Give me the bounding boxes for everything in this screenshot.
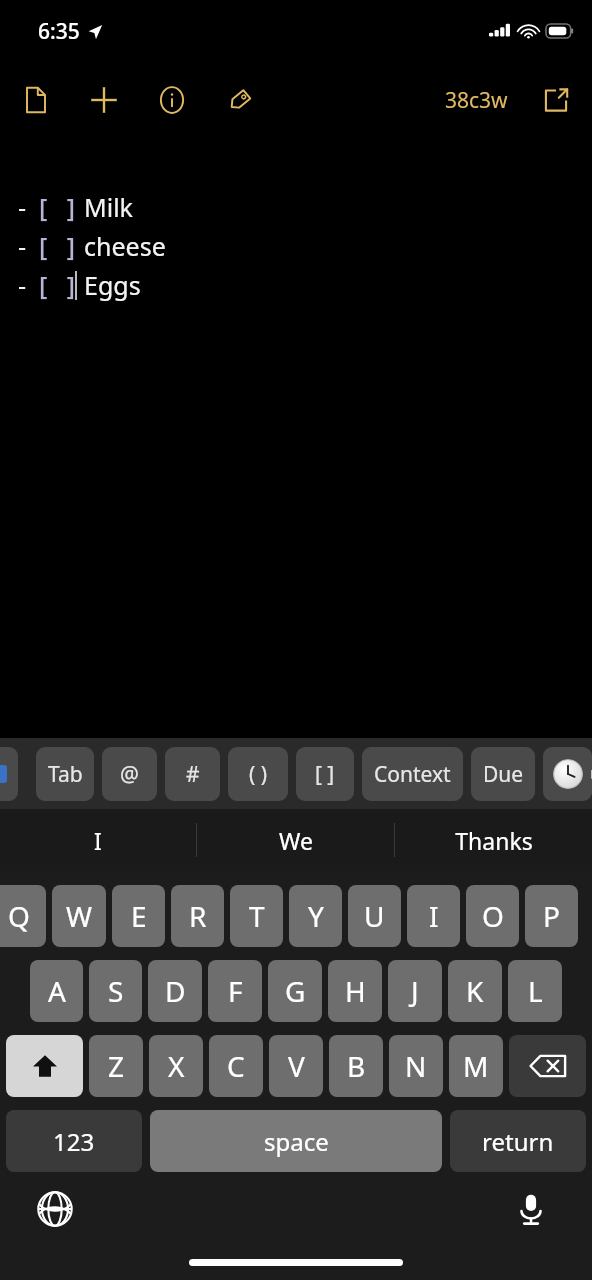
button[interactable]: - [ ] bbox=[0, 138, 592, 738]
button[interactable]: Open in new window bbox=[534, 78, 578, 122]
staticText: C bbox=[227, 1047, 245, 1085]
button[interactable]: B bbox=[329, 1035, 383, 1097]
staticText: ( ) bbox=[249, 760, 268, 789]
staticText: I bbox=[429, 897, 439, 935]
button[interactable]: Shift bbox=[6, 1035, 83, 1097]
staticText: O bbox=[482, 897, 504, 935]
staticText: E bbox=[131, 897, 147, 935]
staticText: S bbox=[108, 972, 124, 1010]
staticText: Context bbox=[374, 760, 451, 789]
button[interactable]: I bbox=[0, 809, 196, 871]
button[interactable]: Context bbox=[362, 747, 463, 801]
staticText: 123 bbox=[53, 1125, 95, 1158]
staticText: We bbox=[279, 825, 313, 856]
staticText: R bbox=[189, 897, 207, 935]
staticText: W bbox=[66, 897, 93, 935]
staticText: F bbox=[228, 972, 243, 1010]
button[interactable]: return bbox=[450, 1110, 586, 1172]
button[interactable]: J bbox=[388, 960, 442, 1022]
button[interactable]: # bbox=[165, 747, 220, 801]
button[interactable]: R bbox=[171, 885, 224, 947]
button[interactable]: O bbox=[466, 885, 519, 947]
button[interactable]: Thanks bbox=[395, 809, 592, 871]
button[interactable]: Tab bbox=[36, 747, 94, 801]
button[interactable]: Z bbox=[89, 1035, 143, 1097]
staticText: P bbox=[543, 897, 560, 935]
button[interactable]: 38c3w bbox=[441, 80, 512, 121]
staticText: N bbox=[405, 1047, 427, 1085]
button[interactable]: A bbox=[30, 960, 83, 1022]
staticText: - [ ] bbox=[18, 229, 76, 263]
staticText: Eggs bbox=[84, 268, 141, 302]
button[interactable]: G bbox=[268, 960, 322, 1022]
staticText: A bbox=[48, 972, 66, 1010]
button[interactable]: Time bbox=[543, 747, 592, 801]
button[interactable]: L bbox=[508, 960, 562, 1022]
staticText: Due bbox=[483, 760, 524, 789]
button[interactable]: W bbox=[52, 885, 106, 947]
button[interactable]: Dictate bbox=[506, 1184, 556, 1234]
staticText: J bbox=[411, 972, 419, 1010]
button[interactable]: T bbox=[230, 885, 283, 947]
button[interactable]: ( ) bbox=[228, 747, 288, 801]
staticText: # bbox=[186, 760, 200, 789]
button[interactable]: K bbox=[448, 960, 502, 1022]
button[interactable]: Switch keyboard language bbox=[30, 1184, 80, 1234]
staticText: @ bbox=[120, 760, 139, 789]
staticText: X bbox=[168, 1047, 185, 1085]
staticText: Thanks bbox=[455, 825, 533, 856]
button[interactable]: S bbox=[89, 960, 142, 1022]
button[interactable]: U bbox=[348, 885, 401, 947]
button[interactable]: C bbox=[209, 1035, 263, 1097]
button[interactable]: I bbox=[407, 885, 460, 947]
button[interactable]: [ ] bbox=[296, 747, 354, 801]
staticText: Y bbox=[308, 897, 324, 935]
staticText: 6:35 bbox=[38, 17, 80, 46]
button[interactable]: P bbox=[525, 885, 578, 947]
staticText: Z bbox=[108, 1047, 125, 1085]
staticText: G bbox=[285, 972, 306, 1010]
staticText: I bbox=[94, 825, 102, 856]
button[interactable]: New document bbox=[14, 78, 58, 122]
staticText: D bbox=[165, 972, 186, 1010]
button[interactable]: E bbox=[112, 885, 165, 947]
button[interactable]: Info bbox=[150, 78, 194, 122]
button[interactable]: Due bbox=[471, 747, 535, 801]
staticText: cheese bbox=[84, 229, 166, 263]
button[interactable]: 123 bbox=[6, 1110, 142, 1172]
button[interactable]: Previous item bbox=[0, 747, 18, 801]
staticText: return bbox=[482, 1125, 554, 1158]
staticText: Tab bbox=[48, 760, 83, 789]
button[interactable]: We bbox=[197, 809, 394, 871]
button[interactable]: Tags bbox=[218, 78, 262, 122]
staticText: - [ ] bbox=[18, 268, 76, 302]
staticText: U bbox=[364, 897, 385, 935]
button[interactable]: V bbox=[269, 1035, 323, 1097]
button[interactable]: Q bbox=[0, 885, 46, 947]
button[interactable]: Y bbox=[289, 885, 342, 947]
button[interactable]: D bbox=[148, 960, 202, 1022]
staticText: [ ] bbox=[315, 760, 335, 789]
staticText: L bbox=[528, 972, 543, 1010]
staticText: B bbox=[347, 1047, 366, 1085]
button[interactable]: @ bbox=[102, 747, 157, 801]
staticText: H bbox=[345, 972, 366, 1010]
staticText: Q bbox=[8, 897, 30, 935]
staticText: 38c3w bbox=[445, 86, 508, 115]
button[interactable]: Backspace bbox=[509, 1035, 586, 1097]
button[interactable]: N bbox=[389, 1035, 443, 1097]
staticText: K bbox=[466, 972, 484, 1010]
staticText: space bbox=[264, 1125, 329, 1158]
button[interactable]: X bbox=[149, 1035, 203, 1097]
button[interactable]: M bbox=[449, 1035, 503, 1097]
staticText: V bbox=[288, 1047, 305, 1085]
staticText: Milk bbox=[84, 190, 133, 224]
button[interactable]: H bbox=[328, 960, 382, 1022]
button[interactable]: Add bbox=[82, 78, 126, 122]
staticText: - [ ] bbox=[18, 190, 76, 224]
staticText: M bbox=[463, 1047, 489, 1085]
staticText: T bbox=[249, 897, 265, 935]
button[interactable]: space bbox=[150, 1110, 442, 1172]
button[interactable]: F bbox=[208, 960, 262, 1022]
